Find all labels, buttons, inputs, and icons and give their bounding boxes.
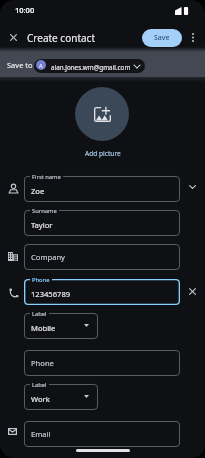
staticText: Label	[32, 381, 47, 389]
button[interactable]: Save	[142, 29, 182, 47]
button[interactable]: Close	[3, 27, 24, 48]
staticText: Company	[31, 252, 65, 262]
staticText: Label	[32, 310, 47, 318]
staticText: Zoe	[31, 186, 45, 196]
staticText: alan.jones.wm@gmail.com	[51, 63, 131, 72]
staticText: Mobile	[31, 323, 56, 333]
staticText: Save	[154, 33, 170, 43]
button[interactable]: More options	[183, 27, 203, 47]
button[interactable]: Phone	[24, 279, 180, 305]
staticText: Email	[31, 429, 51, 439]
button[interactable]: Company	[24, 244, 180, 270]
staticText: Phone	[32, 276, 50, 284]
button[interactable]: Add picture	[75, 87, 129, 141]
button[interactable]: Phone	[24, 350, 180, 376]
staticText: 123456789	[31, 289, 71, 299]
staticText: First name	[32, 173, 61, 181]
button[interactable]: Label	[24, 313, 98, 339]
button[interactable]: Label	[24, 384, 98, 410]
button[interactable]: A	[34, 59, 145, 73]
staticText: Taylor	[31, 220, 53, 230]
staticText: 10:00	[15, 5, 35, 15]
button[interactable]: Email	[24, 421, 180, 447]
button[interactable]: Add picture	[85, 149, 121, 158]
button[interactable]: More name fields	[185, 180, 199, 194]
button[interactable]: First name	[24, 176, 180, 202]
staticText: A	[39, 62, 43, 69]
staticText: Phone	[31, 358, 54, 368]
button[interactable]: Surname	[24, 210, 180, 236]
staticText: Save to	[7, 60, 33, 70]
button[interactable]: Clear phone number	[185, 284, 199, 298]
staticText: Surname	[32, 207, 57, 215]
staticText: Create contact	[27, 31, 96, 45]
staticText: Work	[31, 394, 50, 404]
